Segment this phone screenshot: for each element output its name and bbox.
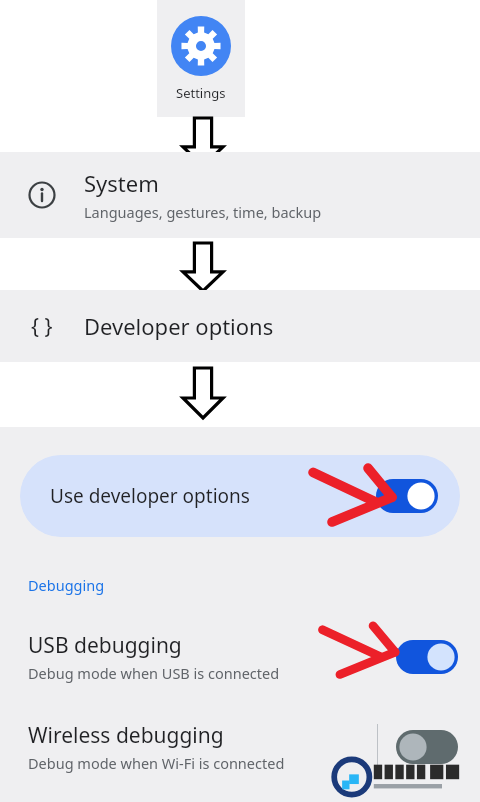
button[interactable]: Settings [157, 0, 245, 117]
button[interactable]: USB debugging [0, 617, 480, 697]
button[interactable]: System [0, 152, 480, 238]
staticText: Developer options [84, 311, 274, 341]
staticText: System [84, 168, 159, 198]
staticText: { } [31, 312, 53, 341]
staticText: Debugging [28, 575, 105, 595]
staticText: Use developer options [50, 483, 250, 509]
staticText: USB debugging [28, 631, 182, 660]
button[interactable]: Use developer options [20, 455, 460, 537]
staticText: Languages, gestures, time, backup [84, 202, 322, 222]
staticText: Wireless debugging [28, 721, 224, 750]
staticText: Debug mode when USB is connected [28, 663, 280, 683]
staticText: Debug mode when Wi-Fi is connected [28, 753, 285, 773]
button[interactable]: { } [0, 290, 480, 362]
staticText: Settings [176, 84, 226, 102]
button[interactable]: Wireless debugging [0, 707, 480, 787]
